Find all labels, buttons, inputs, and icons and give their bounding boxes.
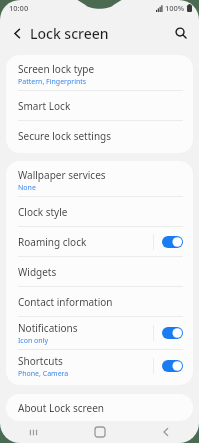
button[interactable]: About Lock screen — [6, 394, 193, 421]
staticText: Clock style — [18, 205, 68, 219]
button[interactable]: Search — [168, 20, 194, 46]
staticText: Screen lock type — [18, 62, 95, 76]
button[interactable]: Smart Lock — [6, 91, 193, 120]
staticText: Secure lock settings — [18, 129, 111, 143]
button[interactable]: Screen lock type — [6, 58, 193, 90]
button[interactable]: Recents — [0, 421, 67, 443]
button[interactable]: Widgets — [6, 257, 193, 286]
staticText: Shortcuts — [18, 354, 63, 368]
button[interactable]: Roaming clock — [6, 227, 193, 256]
button[interactable]: Roaming clock toggle — [162, 236, 183, 248]
button[interactable]: Notifications toggle — [162, 327, 183, 339]
staticText: Contact information — [18, 295, 113, 309]
staticText: Pattern, Fingerprints — [18, 77, 87, 87]
button[interactable]: Contact information — [6, 287, 193, 316]
staticText: Smart Lock — [18, 99, 71, 113]
staticText: Notifications — [18, 321, 78, 335]
button[interactable]: Back — [4, 20, 30, 46]
button[interactable]: Clock style — [6, 197, 193, 226]
staticText: Widgets — [18, 265, 57, 279]
button[interactable]: Notifications — [6, 317, 193, 349]
button[interactable]: Shortcuts — [6, 350, 193, 382]
staticText: Roaming clock — [18, 235, 87, 249]
staticText: Icon only — [18, 336, 49, 346]
staticText: About Lock screen — [18, 401, 104, 415]
button[interactable]: Wallpaper services — [6, 164, 193, 196]
button[interactable]: Shortcuts toggle — [162, 360, 183, 372]
staticText: None — [18, 183, 36, 193]
staticText: 10:00 — [9, 3, 29, 13]
staticText: Wallpaper services — [18, 168, 106, 182]
button[interactable]: Back — [133, 421, 199, 443]
staticText: 100% — [165, 3, 185, 13]
button[interactable]: Secure lock settings — [6, 121, 193, 150]
staticText: Lock screen — [30, 24, 109, 43]
staticText: Phone, Camera — [18, 369, 69, 379]
button[interactable]: Home — [67, 421, 133, 443]
